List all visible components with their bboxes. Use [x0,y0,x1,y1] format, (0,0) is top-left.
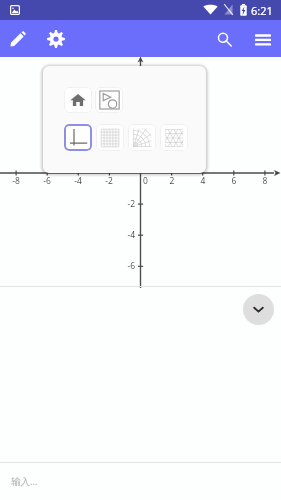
staticText: 6 [225,175,243,187]
button[interactable]: Settings [42,25,70,53]
staticText: 0 [143,175,161,187]
button[interactable]: Shapes [95,87,123,113]
staticText: 4 [194,175,212,187]
staticText: -2 [114,198,135,210]
button[interactable]: Home [64,87,92,113]
button[interactable]: Edit [4,25,32,53]
staticText: -8 [7,175,25,187]
button[interactable]: 输入... [0,463,281,500]
staticText: -6 [114,260,135,272]
staticText: -2 [100,175,118,187]
button[interactable]: Search [210,25,238,53]
button[interactable]: Menu [249,25,277,53]
button[interactable]: Collapse [243,294,274,325]
staticText: -4 [69,175,87,187]
staticText: 输入... [11,475,38,488]
staticText: -6 [38,175,56,187]
staticText: 2 [163,175,181,187]
button[interactable]: Grid style 1 [64,124,92,151]
button[interactable]: Grid style 4 [160,124,188,151]
button[interactable]: Grid style 2 [96,124,124,151]
staticText: 8 [256,175,274,187]
staticText: -4 [114,229,135,241]
button[interactable]: Grid style 3 [128,124,156,151]
staticText: 6:21 [251,3,273,18]
